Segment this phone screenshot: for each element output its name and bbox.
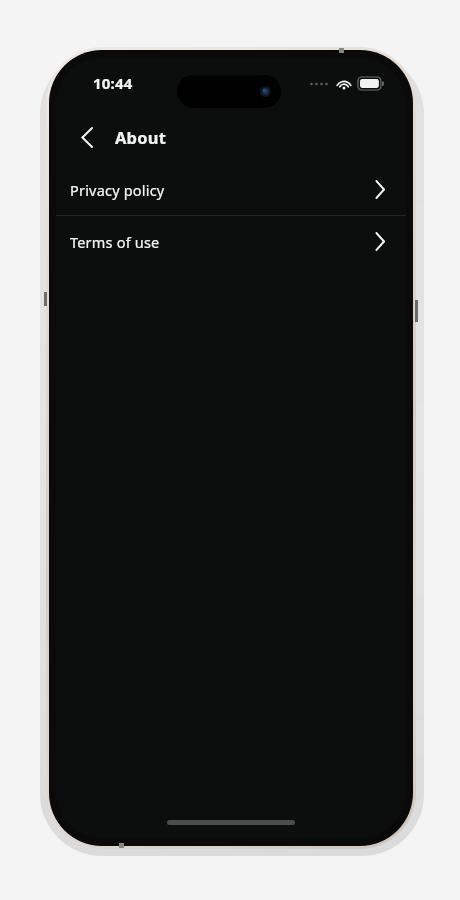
- button[interactable]: Terms of use: [56, 216, 406, 267]
- staticText: Privacy policy: [70, 180, 165, 200]
- button[interactable]: Privacy policy: [56, 164, 406, 215]
- staticText: Terms of use: [70, 232, 160, 252]
- button[interactable]: Back: [70, 120, 104, 154]
- staticText: 10:44: [93, 73, 133, 93]
- staticText: About: [115, 126, 167, 148]
